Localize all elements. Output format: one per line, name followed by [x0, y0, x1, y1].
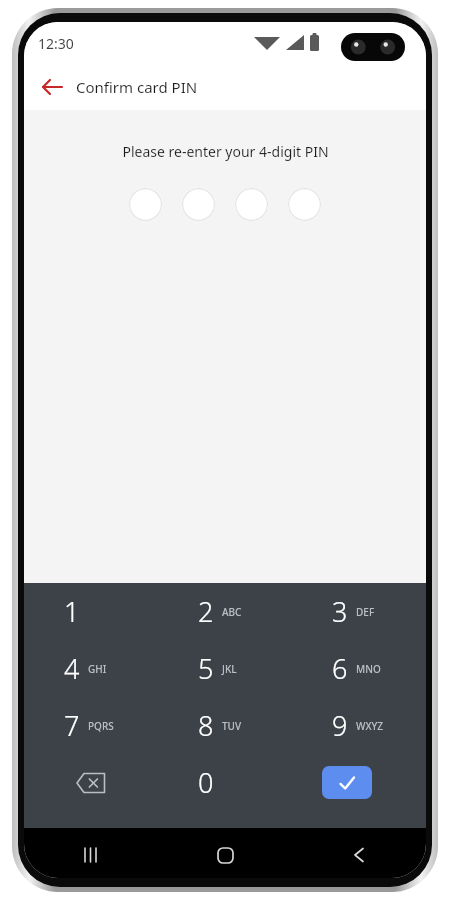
button[interactable]: 6: [292, 640, 426, 697]
button[interactable]: Back: [32, 67, 72, 107]
staticText: 2: [198, 593, 214, 630]
button[interactable]: Home: [158, 838, 292, 872]
button[interactable]: 2: [158, 583, 292, 640]
button[interactable]: 1: [24, 583, 158, 640]
staticText: 9: [332, 707, 348, 744]
staticText: WXYZ: [356, 719, 384, 733]
staticText: JKL: [222, 662, 237, 676]
staticText: DEF: [356, 605, 375, 619]
button[interactable]: 5: [158, 640, 292, 697]
staticText: Please re-enter your 4-digit PIN: [122, 142, 329, 161]
staticText: 0: [198, 764, 214, 801]
staticText: GHI: [88, 662, 107, 676]
staticText: 5: [198, 650, 214, 687]
staticText: 12:30: [38, 34, 74, 53]
button[interactable]: 7: [24, 697, 158, 754]
staticText: 3: [332, 593, 348, 630]
button[interactable]: 0: [158, 754, 292, 811]
staticText: Confirm card PIN: [76, 77, 198, 97]
button[interactable]: Recent apps: [24, 838, 158, 872]
staticText: 1: [64, 593, 80, 630]
staticText: MNO: [356, 662, 381, 676]
button[interactable]: 8: [158, 697, 292, 754]
staticText: 8: [198, 707, 214, 744]
button[interactable]: Back: [292, 838, 426, 872]
staticText: 6: [332, 650, 348, 687]
staticText: TUV: [222, 719, 242, 733]
staticText: 4: [64, 650, 80, 687]
staticText: PQRS: [88, 719, 114, 733]
button[interactable]: Delete: [24, 754, 158, 811]
staticText: 7: [64, 707, 80, 744]
button[interactable]: Confirm: [322, 766, 372, 799]
button[interactable]: 4: [24, 640, 158, 697]
staticText: ABC: [222, 605, 242, 619]
button[interactable]: 9: [292, 697, 426, 754]
button[interactable]: 3: [292, 583, 426, 640]
